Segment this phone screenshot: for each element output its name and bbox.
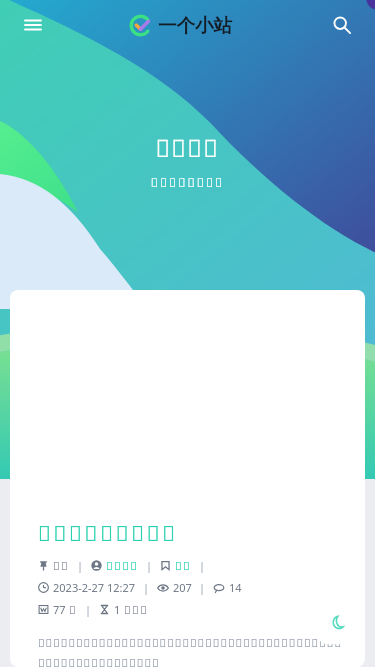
- staticText: ￿￿￿: [124, 602, 149, 617]
- staticText: |: [199, 580, 206, 595]
- staticText: ￿￿: [53, 558, 70, 573]
- button[interactable]: Toggle dark mode: [316, 602, 358, 644]
- staticText: 14: [229, 580, 242, 595]
- staticText: ￿￿￿￿￿￿￿￿￿: [38, 519, 178, 548]
- button[interactable]: Search: [327, 10, 357, 40]
- button[interactable]: Menu: [18, 10, 48, 40]
- staticText: 77: [53, 602, 69, 617]
- staticText: ￿￿￿￿: [0, 131, 375, 164]
- staticText: |: [146, 558, 153, 573]
- staticText: ￿￿: [175, 558, 192, 573]
- staticText: 1: [114, 602, 124, 617]
- staticText: ￿￿￿￿: [106, 558, 139, 573]
- staticText: |: [143, 580, 150, 595]
- staticText: |: [85, 602, 92, 617]
- staticText: 207: [173, 580, 192, 595]
- staticText: ￿: [69, 602, 78, 617]
- staticText: ￿￿￿￿￿￿￿￿: [0, 174, 375, 190]
- staticText: ￿￿￿￿￿￿￿￿￿￿￿￿￿￿￿￿￿￿￿￿￿￿￿￿￿￿￿￿￿￿￿￿￿￿￿￿￿￿￿￿…: [38, 635, 345, 667]
- staticText: 2023-2-27 12:27: [53, 580, 136, 595]
- staticText: 一个小站: [158, 14, 232, 37]
- staticText: |: [77, 558, 84, 573]
- staticText: |: [199, 558, 206, 573]
